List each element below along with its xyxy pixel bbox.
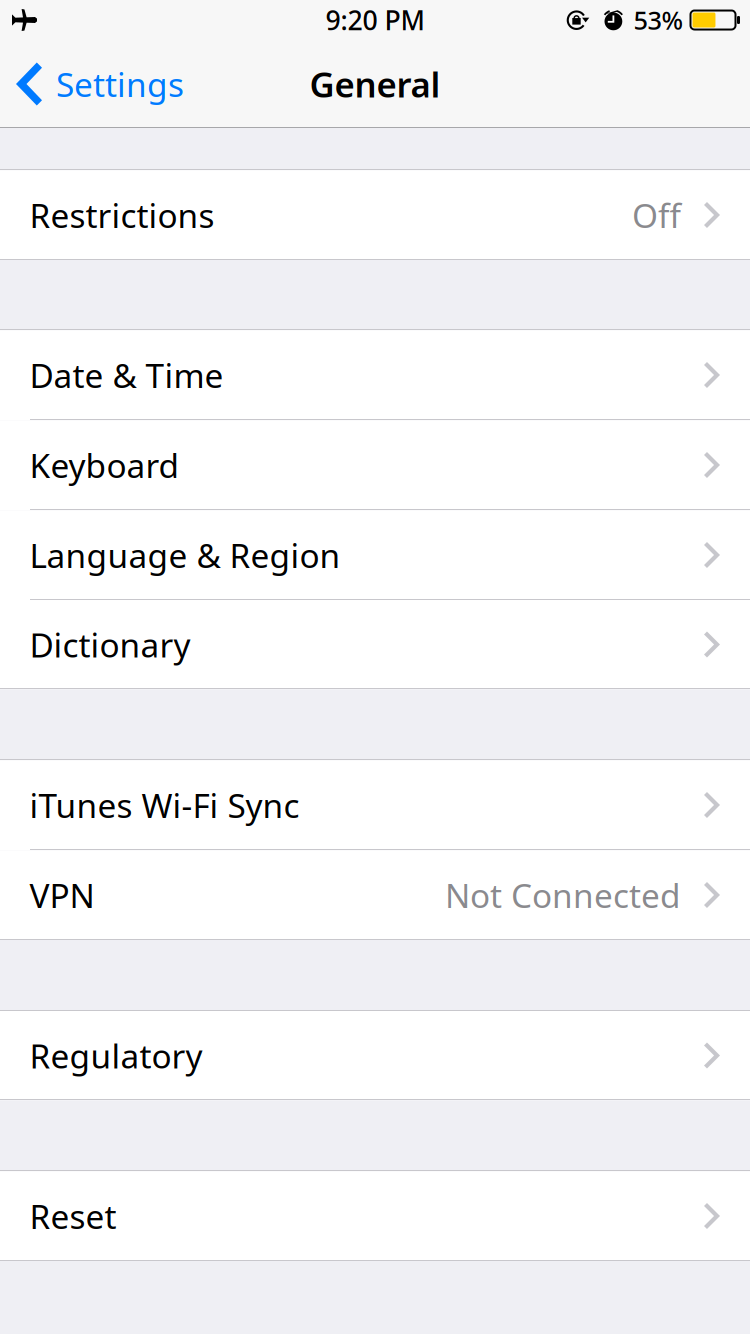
staticText: 53%	[633, 3, 683, 37]
staticText: VPN	[29, 873, 94, 917]
button[interactable]: Dictionary	[0, 600, 750, 689]
staticText: iTunes Wi-Fi Sync	[29, 783, 299, 827]
button[interactable]: Regulatory	[0, 1011, 750, 1100]
button[interactable]: Date & Time	[0, 330, 750, 420]
staticText: 9:20 PM	[325, 2, 424, 38]
staticText: Dictionary	[29, 622, 190, 667]
button[interactable]: Language & Region	[0, 510, 750, 600]
staticText: Language & Region	[29, 533, 340, 577]
staticText: Restrictions	[29, 193, 214, 237]
staticText: Regulatory	[29, 1033, 202, 1078]
button[interactable]: VPN	[0, 850, 750, 940]
staticText: Settings	[56, 62, 184, 106]
staticText: General	[309, 61, 440, 107]
button[interactable]: Settings	[0, 40, 196, 128]
staticText: Keyboard	[29, 443, 179, 487]
button[interactable]: Restrictions	[0, 170, 750, 260]
button[interactable]: Reset	[0, 1171, 750, 1261]
button[interactable]: iTunes Wi-Fi Sync	[0, 760, 750, 850]
staticText: Date & Time	[29, 353, 223, 397]
staticText: Reset	[29, 1194, 116, 1238]
button[interactable]: Keyboard	[0, 420, 750, 510]
staticText: Not Connected	[445, 873, 681, 917]
staticText: Off	[632, 193, 681, 237]
